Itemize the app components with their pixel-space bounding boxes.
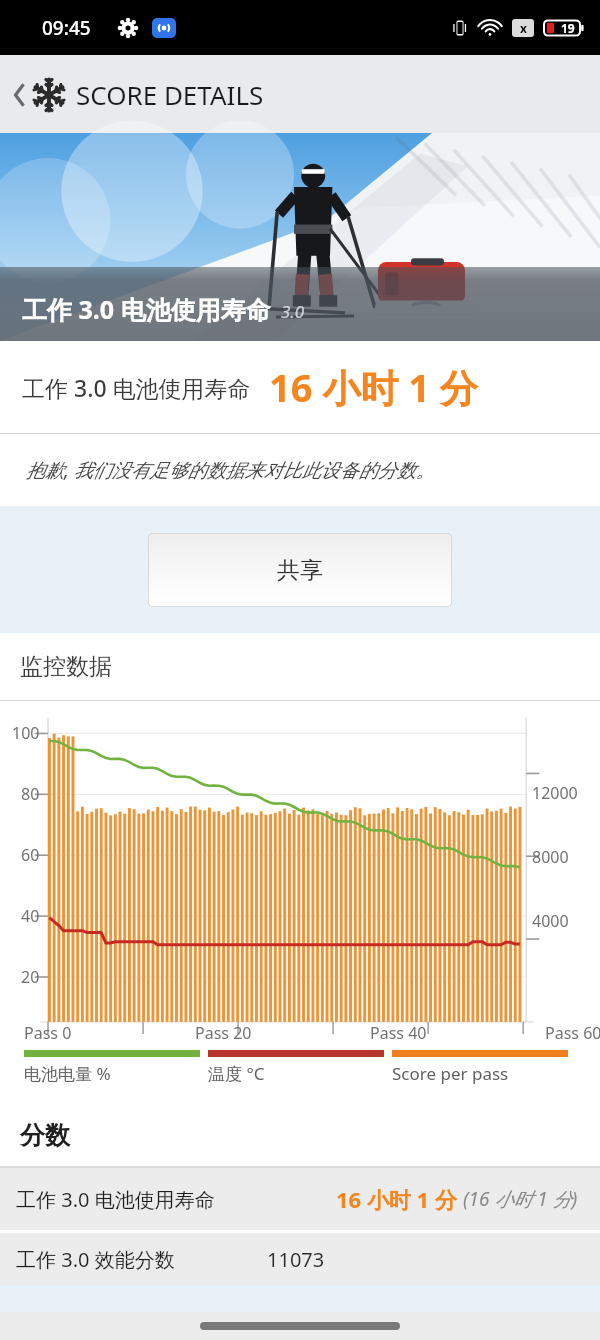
button[interactable]: 共享 xyxy=(148,533,452,607)
staticText: 工作 3.0 电池使用寿命 xyxy=(16,1186,215,1213)
button[interactable]: 工作 3.0 效能分数 xyxy=(0,1233,600,1285)
staticText: Pass 20 xyxy=(195,1022,252,1044)
staticText: 温度 °C xyxy=(208,1062,265,1085)
staticText: 16 小时 1 分 xyxy=(336,1184,457,1214)
staticText: 40 xyxy=(21,905,40,927)
staticText: 电池电量 % xyxy=(24,1062,111,1085)
button[interactable]: Back xyxy=(8,77,268,112)
staticText: (16 小时 1 分) xyxy=(463,1186,578,1212)
staticText: 工作 3.0 电池使用寿命 xyxy=(22,292,271,326)
staticText: 11073 xyxy=(267,1246,325,1273)
staticText: 100 xyxy=(12,722,40,744)
staticText: 16 小时 1 分 xyxy=(269,361,478,413)
staticText: 4000 xyxy=(532,910,569,932)
staticText: Score per pass xyxy=(392,1062,509,1085)
staticText: 19 xyxy=(561,20,575,36)
staticText: 09:45 xyxy=(42,15,91,41)
staticText: 监控数据 xyxy=(20,652,112,681)
staticText: SCORE DETAILS xyxy=(76,77,264,112)
staticText: 8000 xyxy=(532,846,569,868)
staticText: 共享 xyxy=(277,556,323,585)
staticText: 工作 3.0 电池使用寿命 xyxy=(22,372,251,403)
staticText: 工作 3.0 效能分数 xyxy=(16,1246,175,1273)
staticText: 分数 xyxy=(20,1120,70,1151)
staticText: 12000 xyxy=(532,782,578,804)
staticText: 3.0 xyxy=(281,300,305,323)
staticText: x xyxy=(520,20,527,36)
staticText: 20 xyxy=(21,966,40,988)
staticText: Pass 60 xyxy=(545,1022,600,1044)
staticText: 60 xyxy=(21,844,40,866)
staticText: 80 xyxy=(21,783,40,805)
staticText: 抱歉, 我们没有足够的数据来对比此设备的分数。 xyxy=(26,457,435,483)
staticText: Pass 0 xyxy=(24,1022,72,1044)
button[interactable]: 工作 3.0 电池使用寿命 xyxy=(0,1168,600,1230)
staticText: Pass 40 xyxy=(370,1022,427,1044)
